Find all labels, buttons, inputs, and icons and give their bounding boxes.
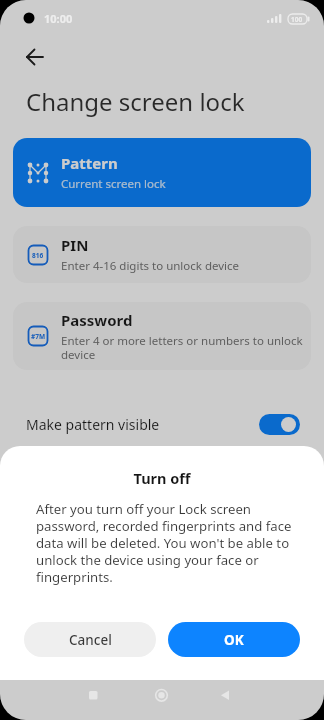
staticText: Turn off bbox=[0, 468, 324, 488]
button[interactable]: Pattern bbox=[13, 138, 311, 207]
button[interactable]: 816 bbox=[13, 226, 311, 283]
button[interactable]: Cancel bbox=[24, 622, 156, 657]
staticText: Enter 4 or more letters or numbers to un… bbox=[61, 333, 303, 362]
button[interactable]: OK bbox=[168, 622, 300, 657]
button[interactable]: #7M bbox=[13, 302, 311, 370]
staticText: OK bbox=[224, 631, 244, 649]
button[interactable] bbox=[81, 683, 106, 708]
button[interactable] bbox=[259, 414, 300, 435]
staticText: Enter 4-16 digits to unlock device bbox=[61, 258, 240, 274]
staticText: PIN bbox=[61, 235, 89, 255]
button[interactable] bbox=[26, 48, 44, 66]
button[interactable] bbox=[213, 683, 238, 708]
staticText: Pattern bbox=[61, 153, 118, 173]
staticText: 100 bbox=[291, 15, 303, 24]
staticText: 10:00 bbox=[44, 11, 73, 26]
staticText: Current screen lock bbox=[61, 176, 166, 192]
button[interactable]: Make pattern visible bbox=[0, 406, 324, 442]
button[interactable] bbox=[149, 683, 174, 708]
staticText: Make pattern visible bbox=[26, 415, 160, 434]
staticText: After you turn off your Lock screen pass… bbox=[36, 500, 292, 586]
staticText: #7M bbox=[31, 332, 46, 341]
staticText: Change screen lock bbox=[26, 85, 245, 118]
staticText: 816 bbox=[32, 251, 44, 260]
staticText: Cancel bbox=[69, 631, 112, 649]
staticText: Password bbox=[61, 310, 133, 330]
